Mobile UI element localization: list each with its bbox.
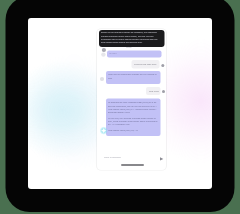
staticText: Sure thing [149,90,159,93]
staticText: Based on the quarterly figures we review… [101,31,161,43]
staticText: Hi there [109,52,117,55]
staticText: Calculate the offer price [134,63,157,66]
staticText: Today [126,46,132,49]
staticText: To estimate the Max Allowable Offer (MAO… [108,101,159,131]
staticText: What kind of investment strategy are you… [108,73,160,79]
staticText: Send a message [104,156,121,159]
